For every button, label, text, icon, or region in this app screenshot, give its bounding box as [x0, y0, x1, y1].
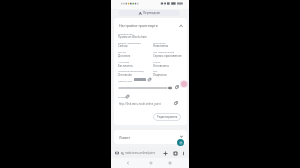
staticText: Состояние: [153, 41, 166, 44]
staticText: Редактировать: [157, 115, 178, 119]
staticText: Прием из Blockchain: [118, 35, 147, 39]
button[interactable]: Лимит: [114, 130, 187, 144]
staticText: Ссылка: [118, 95, 127, 98]
staticText: Настройки транспорта: [119, 23, 158, 28]
staticText: Источник: [118, 60, 130, 63]
button[interactable]: New tab: [163, 151, 168, 156]
button[interactable]: Recent apps: [168, 161, 172, 165]
button[interactable]: Copy password: [175, 85, 179, 89]
button[interactable]: Back: [126, 161, 130, 165]
staticText: Доступ: [118, 50, 127, 53]
button[interactable]: Copy: [148, 78, 151, 81]
button[interactable]: Переводчик: [119, 10, 180, 16]
staticText: Тип: [153, 69, 158, 72]
staticText: Сейчас: [118, 44, 128, 48]
staticText: Переводчик: [143, 11, 161, 15]
staticText: Пароль для: [118, 79, 132, 82]
button[interactable]: Add: [177, 139, 184, 146]
staticText: Отключено: [153, 64, 169, 68]
staticText: Сервис-приложение: [153, 54, 182, 58]
staticText: Соединение: [118, 32, 133, 35]
staticText: Неактивно: [153, 44, 169, 48]
staticText: Тип подключения: [153, 50, 175, 53]
staticText: Лимит: [119, 135, 131, 140]
staticText: http://link.tesru.node.online_point: [119, 102, 161, 106]
staticText: Автоматический вход: [118, 69, 144, 72]
staticText: Для всех: [118, 54, 131, 58]
staticText: Статус: [153, 60, 161, 63]
staticText: Номер соединения: [118, 41, 141, 44]
button[interactable]: Reader mode: [115, 151, 119, 155]
button[interactable]: Редактировать: [153, 113, 181, 121]
staticText: node.tesru.online/point: [125, 151, 155, 155]
button[interactable]: Copy link: [174, 101, 178, 105]
staticText: Подписка: [153, 73, 167, 77]
staticText: Бесплатно: [118, 64, 133, 68]
button[interactable]: Home: [149, 161, 153, 165]
button[interactable]: Collapse: [178, 23, 184, 29]
button[interactable]: Expand: [179, 134, 184, 139]
staticText: Отключён: [118, 73, 133, 77]
button[interactable]: More options: [181, 151, 186, 156]
button[interactable]: Tabs: [173, 151, 178, 156]
button[interactable]: Show password: [168, 86, 172, 90]
